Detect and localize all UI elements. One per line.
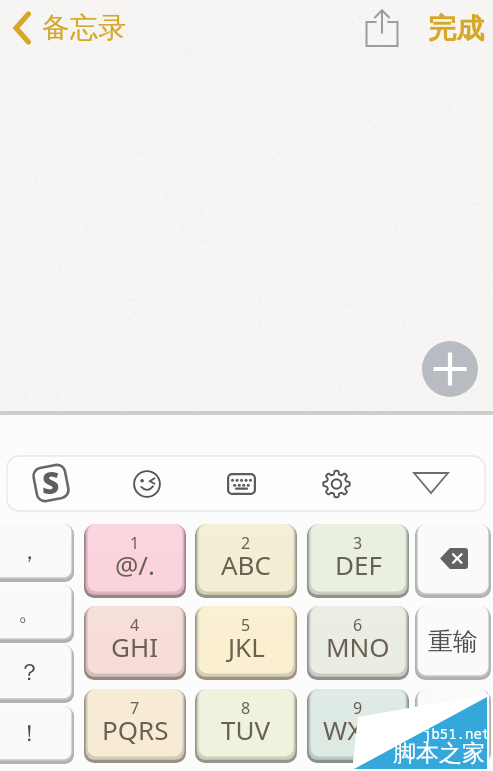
button[interactable] [415, 524, 491, 598]
staticText: 7 [130, 697, 140, 719]
staticText: WXYZ [323, 712, 393, 747]
button[interactable]: ？ [0, 645, 74, 703]
staticText: 备忘录 [42, 10, 126, 45]
button[interactable]: Keyboard layout [227, 473, 256, 495]
button[interactable]: ！ [0, 706, 74, 764]
staticText: S [42, 462, 60, 503]
button[interactable]: Input method [30, 462, 72, 504]
staticText: 脚本之家 [393, 739, 485, 768]
button[interactable]: 3 [307, 524, 409, 598]
staticText: ！ [18, 719, 41, 748]
staticText: JKL [228, 629, 265, 664]
button[interactable]: 重输 [415, 606, 491, 680]
staticText: ？ [18, 658, 41, 687]
staticText: MNO [326, 629, 390, 664]
button[interactable]: Hide keyboard [412, 470, 450, 496]
staticText: PQRS [102, 712, 169, 747]
button[interactable]: 8 [195, 689, 297, 763]
staticText: 4 [130, 614, 140, 636]
button[interactable]: Emoji [133, 470, 161, 498]
staticText: 。 [18, 598, 41, 627]
staticText: 8 [241, 697, 251, 719]
button[interactable]: 1 [84, 524, 186, 598]
button[interactable]: Share [364, 8, 400, 48]
staticText: 6 [353, 614, 363, 636]
staticText: 5 [241, 614, 251, 636]
staticText: ABC [221, 547, 271, 582]
button[interactable]: 2 [195, 524, 297, 598]
staticText: 2 [241, 532, 251, 554]
button[interactable]: 5 [195, 606, 297, 680]
staticText: GHI [111, 629, 159, 664]
button[interactable]: 9 [307, 689, 409, 763]
staticText: 9 [353, 697, 363, 719]
button[interactable]: 4 [84, 606, 186, 680]
button[interactable]: 7 [84, 689, 186, 763]
button[interactable]: ， [0, 524, 74, 582]
staticText: @/. [115, 547, 156, 582]
button[interactable]: 完成 [428, 11, 484, 46]
button[interactable]: 6 [307, 606, 409, 680]
button[interactable] [415, 689, 491, 763]
staticText: 完成 [428, 11, 484, 46]
staticText: jb51.net [423, 724, 491, 743]
button[interactable]: Settings [322, 469, 351, 499]
staticText: DEF [335, 547, 382, 582]
staticText: TUV [221, 712, 271, 747]
button[interactable]: Add note [422, 341, 478, 397]
staticText: ， [18, 537, 41, 566]
button[interactable]: 备忘录 [12, 10, 126, 45]
staticText: 1 [130, 532, 140, 554]
button[interactable]: 。 [0, 585, 74, 643]
staticText: 3 [353, 532, 363, 554]
staticText: 重输 [428, 626, 478, 657]
